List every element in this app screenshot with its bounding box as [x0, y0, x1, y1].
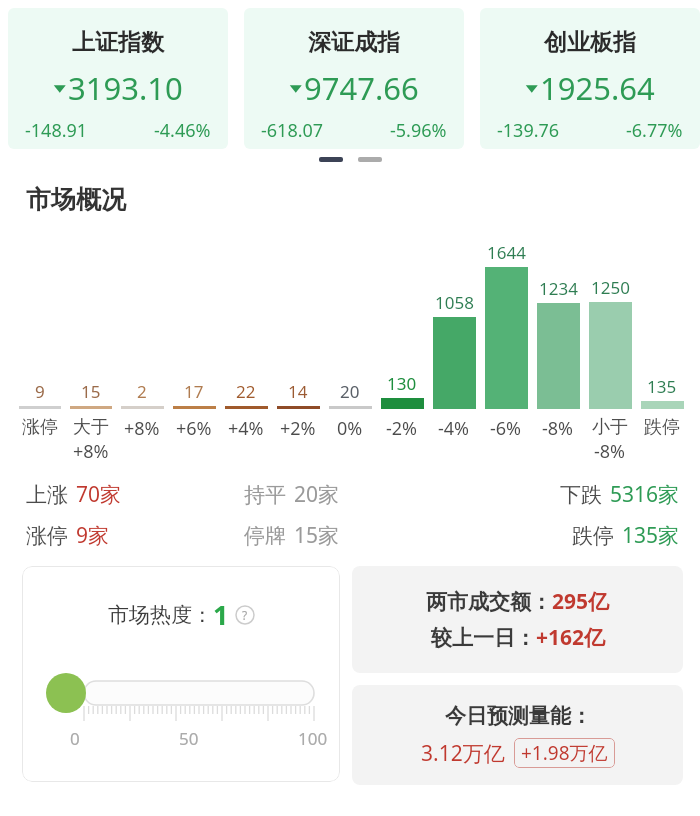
- staticText: 1644: [487, 241, 526, 264]
- staticText: 130: [387, 372, 417, 395]
- staticText: +6%: [176, 416, 212, 441]
- button[interactable]: 1234: [532, 277, 584, 409]
- button[interactable]: 22: [220, 380, 272, 409]
- staticText: 14: [288, 380, 308, 403]
- button[interactable]: 17: [168, 380, 220, 409]
- staticText: +4%: [228, 416, 264, 441]
- staticText: 22: [236, 380, 256, 403]
- staticText: 1925.64: [540, 67, 655, 109]
- staticText: 3.12万亿: [421, 739, 505, 768]
- staticText: -5.96%: [390, 118, 447, 143]
- staticText: 上证指数: [72, 28, 164, 57]
- staticText: 9747.66: [304, 67, 419, 109]
- staticText: -4%: [438, 416, 470, 441]
- staticText: -618.07: [261, 118, 324, 143]
- button[interactable]: 上证指数: [8, 8, 228, 149]
- staticText: 9: [35, 380, 45, 403]
- staticText: ?: [242, 607, 248, 623]
- staticText: 20: [340, 380, 360, 403]
- staticText: 50: [179, 727, 199, 750]
- staticText: 2: [137, 380, 147, 403]
- staticText: -148.91: [25, 118, 88, 143]
- staticText: +8%: [124, 416, 160, 441]
- staticText: 9家: [76, 521, 110, 550]
- staticText: 深证成指: [308, 28, 400, 57]
- staticText: 持平: [244, 482, 286, 508]
- staticText: 0: [70, 727, 80, 750]
- staticText: 1: [213, 596, 229, 633]
- staticText: 1234: [539, 277, 578, 300]
- staticText: 3193.10: [68, 67, 183, 109]
- staticText: -8%: [542, 416, 574, 441]
- staticText: 上涨: [26, 482, 68, 508]
- staticText: -2%: [386, 416, 418, 441]
- staticText: -6.77%: [626, 118, 683, 143]
- staticText: 涨停: [22, 416, 58, 439]
- staticText: 大于: [73, 416, 109, 439]
- staticText: 下跌: [560, 482, 602, 508]
- staticText: 停牌: [244, 523, 286, 549]
- staticText: +2%: [280, 416, 316, 441]
- button[interactable]: 1644: [480, 241, 532, 409]
- staticText: 市场热度：: [108, 602, 213, 628]
- button[interactable]: 20: [324, 380, 376, 409]
- staticText: 1058: [435, 291, 474, 314]
- button[interactable]: 135: [636, 375, 688, 409]
- button[interactable]: 第二页: [358, 157, 382, 162]
- button[interactable]: 2: [116, 380, 168, 409]
- staticText: 跌停: [572, 523, 614, 549]
- staticText: 100: [298, 727, 328, 750]
- staticText: 较上一日：: [431, 625, 536, 651]
- button[interactable]: 1058: [428, 291, 480, 409]
- staticText: 两市成交额：: [426, 589, 552, 615]
- staticText: 5316家: [610, 480, 680, 509]
- staticText: 1250: [591, 276, 630, 299]
- button[interactable]: 9: [14, 380, 65, 409]
- staticText: 15家: [294, 521, 340, 550]
- button[interactable]: 15: [65, 380, 116, 409]
- staticText: 今日预测量能：: [445, 703, 592, 729]
- staticText: -6%: [490, 416, 522, 441]
- staticText: 15: [81, 380, 101, 403]
- staticText: +1.98万亿: [521, 740, 608, 766]
- button[interactable]: 市场热度说明: [235, 605, 255, 625]
- staticText: 17: [184, 380, 204, 403]
- staticText: 跌停: [644, 416, 680, 439]
- staticText: 涨停: [26, 523, 68, 549]
- button[interactable]: 市场热度：: [22, 566, 340, 782]
- staticText: 20家: [294, 480, 340, 509]
- staticText: -8%: [594, 439, 626, 464]
- staticText: 295亿: [552, 587, 610, 616]
- staticText: 70家: [76, 480, 122, 509]
- button[interactable]: 两市成交额：: [352, 566, 683, 673]
- button[interactable]: 深证成指: [244, 8, 464, 149]
- staticText: 0%: [337, 416, 363, 441]
- staticText: 创业板指: [544, 28, 636, 57]
- button[interactable]: 第一页: [319, 157, 343, 162]
- staticText: 135: [647, 375, 677, 398]
- button[interactable]: 创业板指: [480, 8, 700, 149]
- staticText: +8%: [73, 439, 109, 464]
- staticText: +162亿: [536, 623, 606, 652]
- staticText: 小于: [592, 416, 628, 439]
- staticText: 市场概况: [26, 184, 126, 215]
- button[interactable]: 14: [272, 380, 324, 409]
- button[interactable]: 1250: [584, 276, 636, 409]
- staticText: -4.46%: [154, 118, 211, 143]
- button[interactable]: 130: [376, 372, 428, 409]
- button[interactable]: 今日预测量能：: [352, 685, 683, 785]
- staticText: 135家: [622, 521, 680, 550]
- staticText: -139.76: [497, 118, 560, 143]
